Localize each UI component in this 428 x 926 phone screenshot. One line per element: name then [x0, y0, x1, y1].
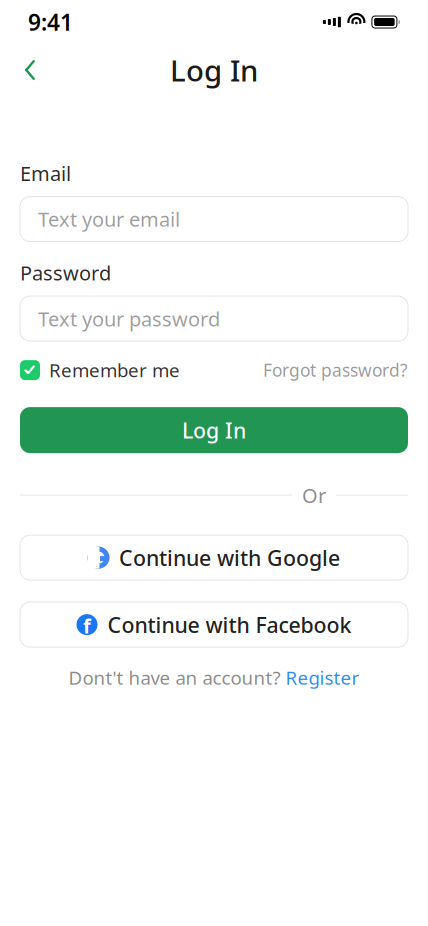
button[interactable]: Back	[8, 48, 52, 92]
button[interactable]: Continue with Google	[20, 535, 408, 580]
staticText: Email	[20, 160, 71, 187]
button[interactable]: Remember me	[20, 358, 180, 382]
staticText: Dont't have an account?	[68, 665, 280, 690]
staticText: Or	[302, 482, 326, 508]
staticText: Register	[285, 665, 359, 690]
staticText: Log In	[182, 416, 246, 444]
staticText: Log In	[170, 50, 258, 89]
button[interactable]: Forgot password?	[263, 359, 408, 382]
staticText: f	[83, 612, 91, 639]
staticText: Password	[20, 260, 111, 286]
staticText: Forgot password?	[263, 359, 408, 382]
button[interactable]: Text your password	[20, 296, 408, 341]
staticText: Text your email	[38, 206, 180, 232]
staticText: 9:41	[28, 7, 73, 37]
staticText: Continue with Facebook	[107, 610, 351, 639]
button[interactable]: Text your email	[20, 197, 408, 242]
staticText: Remember me	[49, 358, 180, 382]
button[interactable]: Register	[285, 665, 359, 690]
staticText: Continue with Google	[119, 543, 340, 572]
staticText: Text your password	[38, 305, 220, 332]
button[interactable]: f	[20, 602, 408, 647]
button[interactable]: Log In	[20, 407, 408, 453]
